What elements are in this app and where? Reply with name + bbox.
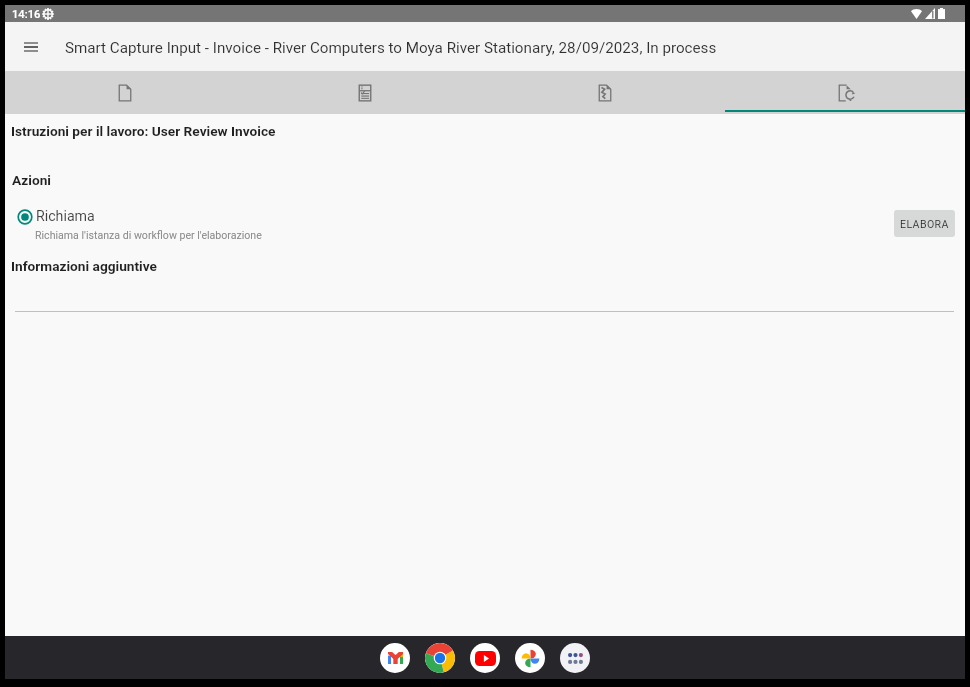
button[interactable]: All apps bbox=[560, 643, 590, 673]
button[interactable]: ELABORA bbox=[894, 210, 955, 237]
staticText: Istruzioni per il lavoro: User Review In… bbox=[11, 123, 276, 139]
button[interactable]: YouTube bbox=[470, 643, 500, 673]
button[interactable]: Gmail bbox=[380, 643, 410, 673]
staticText: Informazioni aggiuntive bbox=[11, 258, 157, 274]
staticText: Smart Capture Input - Invoice - River Co… bbox=[65, 39, 717, 57]
button[interactable]: Apri menu di navigazione bbox=[5, 23, 53, 71]
button[interactable]: Dati estratti bbox=[485, 71, 725, 114]
staticText: ELABORA bbox=[900, 218, 949, 230]
button[interactable]: Richiama bbox=[17, 205, 117, 227]
button[interactable]: Documento bbox=[5, 71, 245, 114]
button[interactable]: Modulo bbox=[245, 71, 485, 114]
button[interactable]: Photos bbox=[515, 643, 545, 673]
button[interactable]: Chrome bbox=[425, 643, 455, 673]
staticText: Richiama bbox=[36, 208, 95, 225]
staticText: Azioni bbox=[12, 172, 51, 188]
button[interactable]: Azioni bbox=[725, 71, 965, 114]
staticText: 14:16 bbox=[12, 8, 41, 21]
staticText: Richiama l'istanza di workflow per l'ela… bbox=[35, 229, 262, 241]
